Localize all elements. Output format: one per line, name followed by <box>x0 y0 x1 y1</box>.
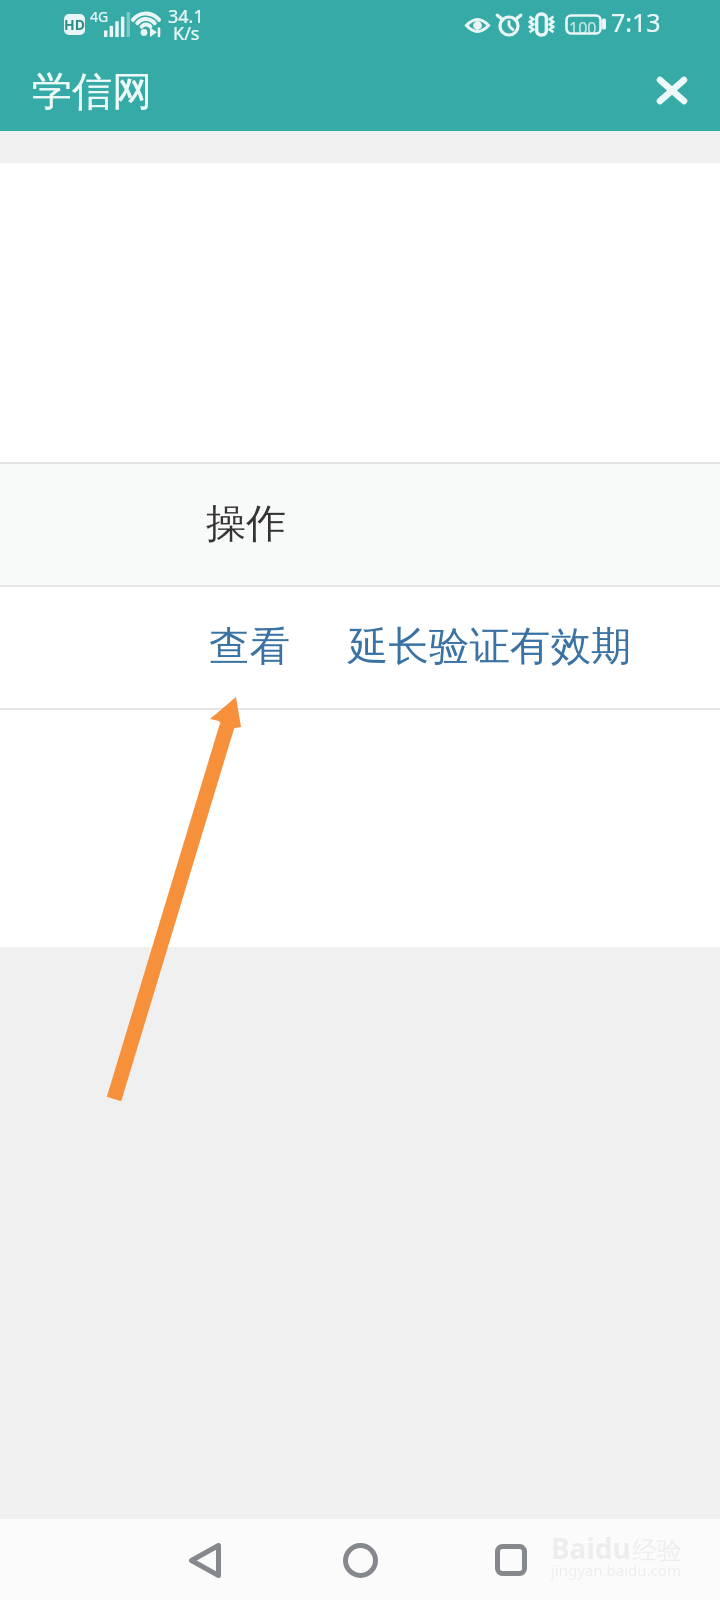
button[interactable]: 操作 <box>0 464 720 585</box>
staticText: 查看 <box>209 621 290 672</box>
staticText: 7:13 <box>611 5 661 39</box>
staticText: K/s <box>173 21 200 46</box>
button[interactable]: Back <box>157 1519 253 1600</box>
staticText: 延长验证有效期 <box>348 621 632 672</box>
button[interactable]: Close <box>640 63 700 123</box>
staticText: HD <box>64 15 85 34</box>
staticText: 4G <box>90 7 109 26</box>
staticText: 100 <box>569 17 597 39</box>
button[interactable]: 查看 <box>180 587 319 708</box>
staticText: jingyan.baidu.com <box>551 1560 681 1580</box>
staticText: 学信网 <box>32 66 152 116</box>
staticText: 经验 <box>632 1535 682 1566</box>
button[interactable]: Home <box>312 1519 408 1600</box>
button[interactable]: 延长验证有效期 <box>319 587 661 708</box>
staticText: 操作 <box>206 498 286 548</box>
button[interactable]: Recent apps <box>463 1519 559 1600</box>
staticText: 34.1 <box>168 4 204 29</box>
staticText: Baidu <box>551 1529 631 1567</box>
